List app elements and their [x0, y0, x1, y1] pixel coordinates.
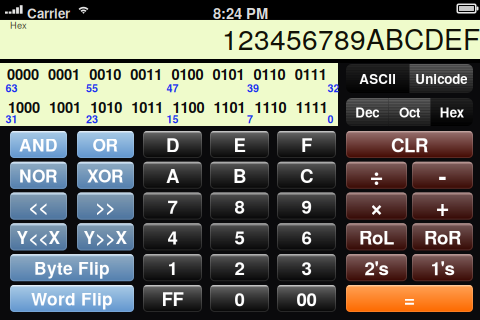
button[interactable]: Hex [431, 98, 473, 126]
button[interactable]: 1's [412, 254, 473, 281]
button[interactable]: 0 [210, 285, 269, 312]
staticText: 123456789ABCDEF [222, 18, 480, 58]
staticText: B [233, 162, 246, 189]
staticText: 0011 [130, 63, 162, 84]
staticText: Dec [355, 102, 379, 122]
button[interactable]: OR [77, 131, 134, 158]
button[interactable]: NOR [10, 162, 67, 189]
staticText: OR [92, 132, 118, 157]
staticText: << [28, 194, 48, 218]
button[interactable]: D [143, 131, 202, 158]
staticText: Carrier [27, 3, 70, 23]
button[interactable]: CLR [346, 131, 473, 158]
staticText: 6 [301, 223, 311, 250]
button[interactable]: 8 [210, 193, 269, 220]
staticText: 1111 [296, 96, 328, 117]
staticText: 1's [430, 254, 454, 281]
button[interactable]: << [10, 193, 67, 220]
button[interactable]: 9 [277, 193, 336, 220]
staticText: XOR [87, 163, 124, 188]
staticText: 1011 [131, 96, 163, 117]
staticText: 7 [247, 111, 253, 127]
staticText: RoR [424, 223, 461, 250]
staticText: 32 [327, 80, 339, 96]
staticText: Y<<X [16, 224, 60, 249]
button[interactable]: - [412, 162, 473, 189]
staticText: Y>>X [83, 224, 127, 249]
staticText: 8 [234, 193, 244, 219]
staticText: 1001 [49, 96, 81, 117]
button[interactable]: Oct [388, 98, 431, 126]
staticText: NOR [19, 163, 58, 188]
button[interactable]: RoL [346, 223, 407, 250]
button[interactable]: ASCII [346, 64, 409, 93]
staticText: 3 [301, 254, 311, 281]
staticText: - [438, 158, 446, 192]
staticText: ASCII [359, 69, 396, 88]
button[interactable]: 2's [346, 254, 407, 281]
button[interactable]: 5 [210, 223, 269, 250]
staticText: = [403, 284, 415, 313]
staticText: 55 [86, 80, 98, 96]
staticText: 0000 [7, 63, 39, 84]
staticText: × [369, 189, 383, 223]
staticText: 7 [167, 193, 177, 219]
staticText: Byte Flip [34, 255, 110, 280]
staticText: 0 [234, 285, 244, 312]
staticText: D [166, 131, 179, 158]
staticText: AND [19, 132, 58, 157]
button[interactable]: A [143, 162, 202, 189]
button[interactable]: Y<<X [10, 223, 67, 250]
staticText: 1000 [8, 96, 40, 117]
button[interactable]: B [210, 162, 269, 189]
button[interactable]: ÷ [346, 162, 407, 189]
button[interactable]: C [277, 162, 336, 189]
staticText: 1110 [255, 96, 287, 117]
button[interactable]: RoR [412, 223, 473, 250]
button[interactable]: 3 [277, 254, 336, 281]
button[interactable]: F [277, 131, 336, 158]
button[interactable]: 4 [143, 223, 202, 250]
button[interactable]: Y>>X [77, 223, 134, 250]
button[interactable]: Byte Flip [10, 254, 134, 281]
staticText: 0010 [89, 63, 121, 84]
button[interactable]: + [412, 193, 473, 220]
staticText: ÷ [369, 158, 383, 192]
staticText: 0100 [171, 63, 203, 84]
button[interactable]: Unicode [409, 64, 473, 93]
staticText: Hex [10, 18, 27, 31]
staticText: 1 [167, 254, 177, 281]
staticText: 1100 [172, 96, 204, 117]
button[interactable]: Word Flip [10, 285, 134, 312]
staticText: Word Flip [31, 286, 113, 311]
staticText: + [435, 189, 449, 223]
staticText: >> [95, 194, 115, 218]
button[interactable]: E [210, 131, 269, 158]
staticText: 23 [86, 111, 98, 127]
button[interactable]: = [346, 285, 473, 312]
staticText: 8:24 PM [213, 2, 268, 23]
staticText: FF [161, 285, 183, 312]
staticText: Unicode [415, 69, 467, 88]
staticText: 2's [364, 254, 388, 281]
staticText: 39 [247, 80, 259, 96]
button[interactable]: 2 [210, 254, 269, 281]
staticText: 15 [166, 111, 178, 127]
button[interactable]: >> [77, 193, 134, 220]
staticText: 47 [166, 80, 178, 96]
button[interactable]: 1 [143, 254, 202, 281]
button[interactable]: 00 [277, 285, 336, 312]
staticText: E [233, 131, 245, 158]
staticText: Hex [440, 102, 464, 122]
staticText: 2 [234, 254, 244, 281]
button[interactable]: × [346, 193, 407, 220]
button[interactable]: FF [143, 285, 202, 312]
button[interactable]: Dec [346, 98, 388, 126]
button[interactable]: 7 [143, 193, 202, 220]
button[interactable]: 6 [277, 223, 336, 250]
staticText: 1010 [90, 96, 122, 117]
button[interactable]: XOR [77, 162, 134, 189]
staticText: Oct [399, 102, 420, 122]
staticText: 0101 [212, 63, 244, 84]
button[interactable]: AND [10, 131, 67, 158]
